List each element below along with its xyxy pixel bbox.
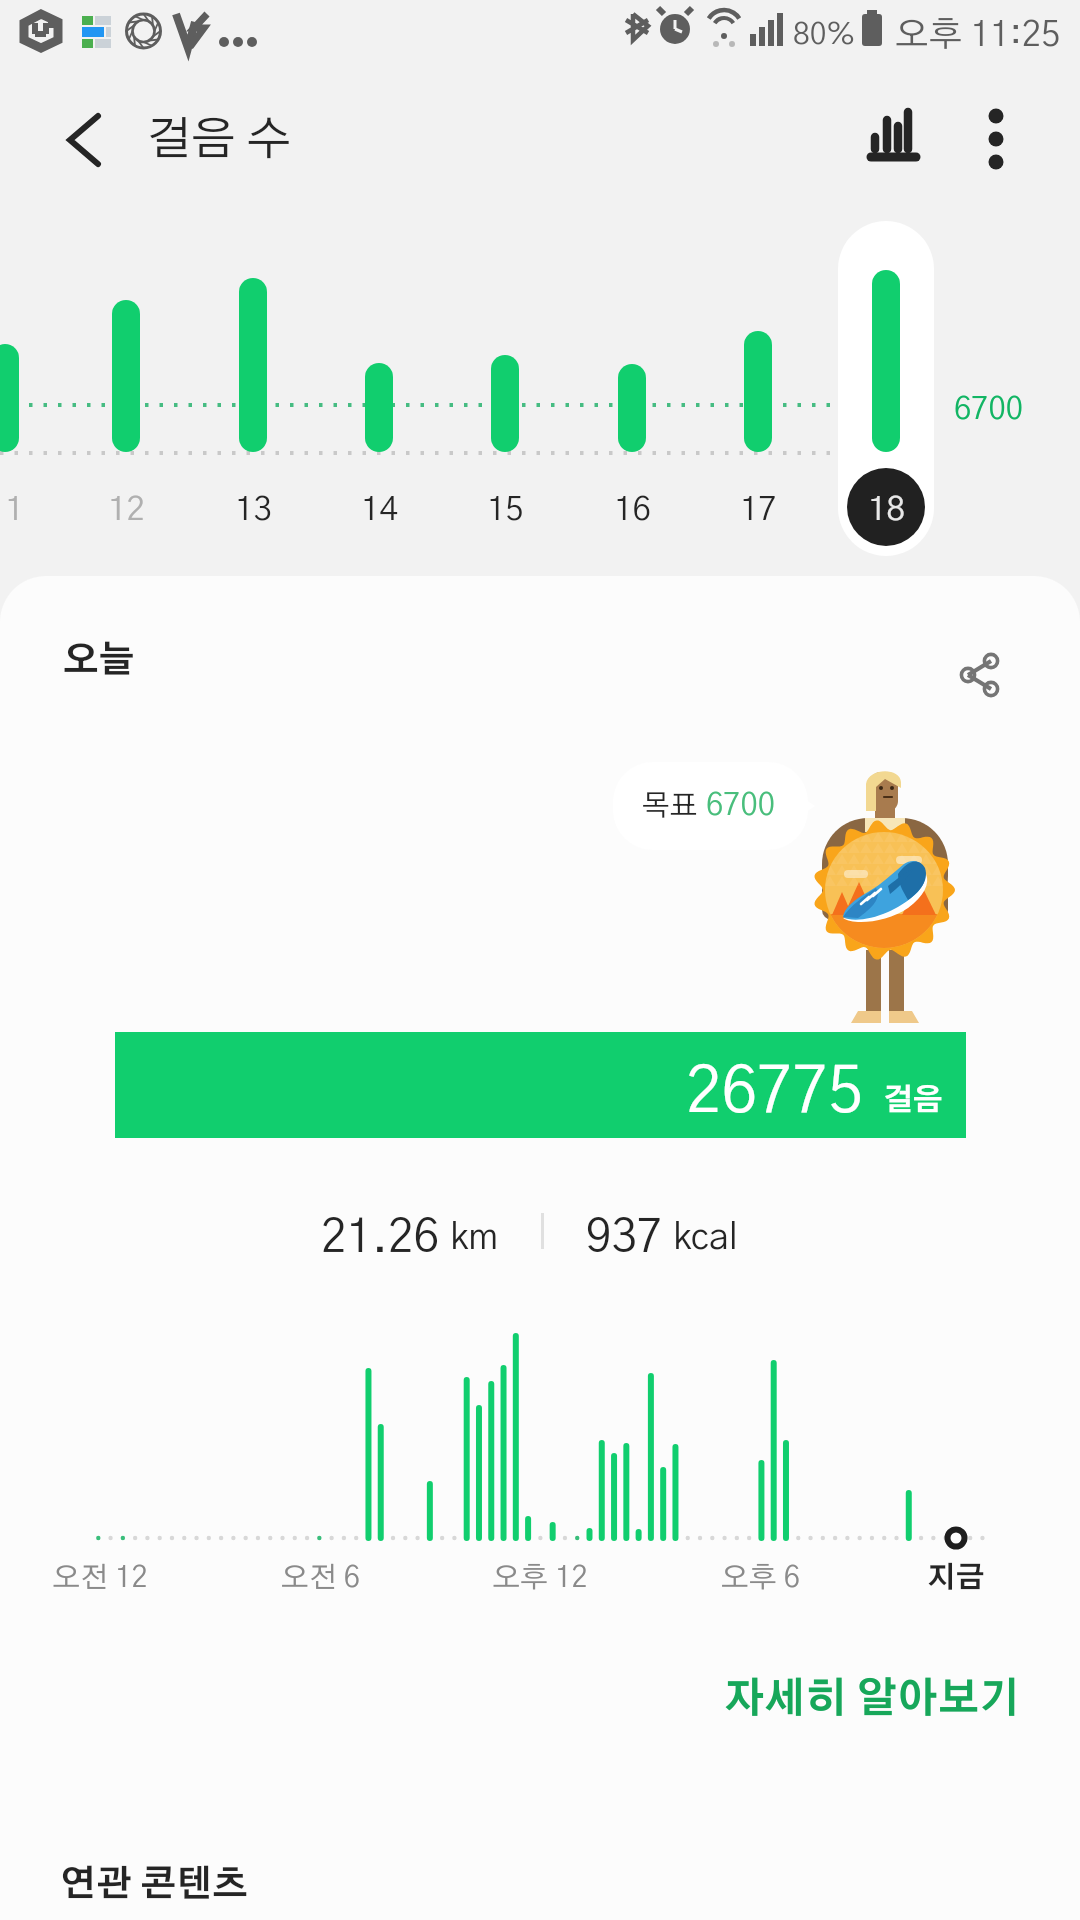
staticText: km (450, 1220, 499, 1256)
staticText: 21.26 (321, 1215, 440, 1261)
button[interactable]: More options (952, 92, 1048, 188)
staticText: 16 (614, 494, 651, 527)
staticText: 11 (0, 494, 24, 527)
staticText: 18 (868, 494, 905, 527)
staticText: 목표 (642, 792, 698, 821)
staticText: 15 (487, 494, 524, 527)
staticText: 연관 콘텐츠 (60, 1867, 249, 1903)
staticText: 걸음 수 (147, 117, 291, 163)
staticText: kcal (673, 1220, 738, 1256)
button[interactable]: 자세히 알아보기 (708, 1661, 1036, 1737)
button[interactable]: 16 (572, 483, 692, 537)
button[interactable]: 14 (319, 483, 439, 537)
staticText: 6700 (706, 790, 775, 821)
button[interactable]: 17 (698, 483, 818, 537)
button[interactable]: Chart (840, 95, 936, 191)
button[interactable]: 11 (0, 483, 65, 537)
button[interactable]: 12 (66, 483, 186, 537)
staticText: 지금 (927, 1564, 985, 1593)
button[interactable]: 13 (193, 483, 313, 537)
button[interactable]: Back (40, 92, 136, 188)
staticText: 12 (108, 494, 145, 527)
staticText: 6700 (954, 394, 1023, 425)
staticText: 13 (235, 494, 272, 527)
staticText: 오후 11:25 (895, 18, 1061, 53)
button[interactable]: Share (935, 631, 1023, 719)
staticText: 오후 12 (492, 1564, 588, 1593)
staticText: 오후 6 (721, 1564, 800, 1593)
staticText: 14 (361, 494, 398, 527)
staticText: 자세히 알아보기 (724, 1679, 1020, 1720)
staticText: 26775 (686, 1061, 864, 1125)
staticText: 걸음 (883, 1086, 943, 1116)
staticText: 17 (740, 494, 777, 527)
button[interactable]: 26775 (115, 1032, 966, 1138)
staticText: 오전 6 (281, 1564, 360, 1593)
button[interactable]: 15 (445, 483, 565, 537)
staticText: 937 (586, 1215, 663, 1261)
staticText: 80% (793, 20, 856, 50)
button[interactable]: 18 (826, 483, 946, 537)
staticText: 오전 12 (52, 1564, 148, 1593)
staticText: 오늘 (63, 643, 135, 679)
